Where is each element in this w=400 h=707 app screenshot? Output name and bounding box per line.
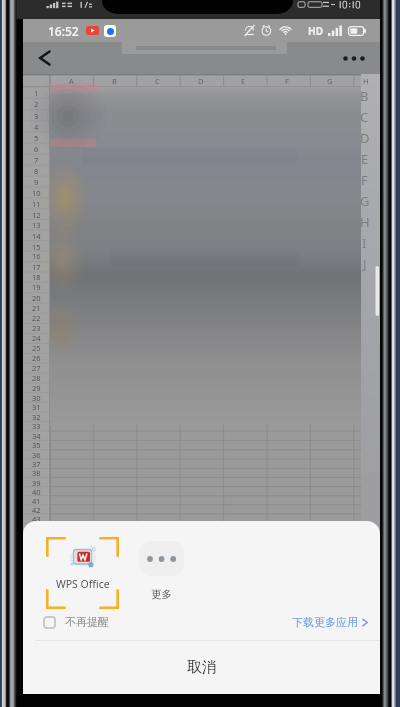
staticText: E	[241, 76, 246, 86]
staticText: 18	[32, 272, 41, 282]
staticText: HD	[308, 24, 323, 38]
staticText: 20	[32, 293, 41, 303]
staticText: 40	[32, 487, 41, 496]
staticText: F	[361, 171, 368, 189]
staticText: 不再提醒	[65, 615, 109, 629]
staticText: 24	[32, 333, 41, 343]
staticText: A	[69, 76, 74, 86]
staticText: B	[360, 87, 369, 105]
staticText: 2	[34, 99, 39, 109]
staticText: 19	[32, 282, 41, 292]
staticText: 9	[34, 177, 39, 187]
staticText: 8	[34, 166, 39, 176]
button[interactable]: WPS Office	[46, 537, 119, 609]
staticText: H	[360, 213, 370, 231]
staticText: 1	[34, 88, 39, 98]
staticText: 12	[32, 210, 41, 220]
staticText: 28	[32, 373, 41, 383]
staticText: D	[360, 129, 370, 147]
staticText: 17	[32, 262, 41, 272]
staticText: I	[362, 234, 367, 252]
staticText: 更多	[151, 588, 172, 601]
staticText: 29	[32, 383, 41, 393]
staticText: C	[360, 108, 369, 126]
staticText: H	[363, 76, 369, 86]
staticText: 6	[34, 144, 39, 154]
staticText: 35	[32, 440, 41, 449]
staticText: 10	[32, 188, 41, 198]
staticText: 取消	[187, 658, 217, 677]
staticText: 7	[34, 155, 39, 165]
staticText: 23	[32, 323, 41, 333]
staticText: 15	[32, 242, 41, 252]
staticText: 36	[32, 450, 41, 459]
staticText: 13	[32, 220, 41, 230]
staticText: B	[112, 76, 117, 86]
staticText: 33	[32, 421, 41, 430]
staticText: G	[327, 76, 333, 86]
staticText: G	[360, 192, 370, 210]
staticText: 41	[32, 496, 41, 505]
staticText: 37	[32, 459, 41, 468]
staticText: 16	[32, 251, 41, 261]
staticText: 5	[34, 133, 39, 143]
staticText: 21	[32, 303, 41, 313]
staticText: 31	[32, 402, 41, 412]
staticText: 43	[32, 514, 41, 523]
staticText: 4	[34, 122, 39, 132]
staticText: C	[155, 76, 160, 86]
staticText: 25	[32, 343, 41, 353]
staticText: 30	[32, 393, 41, 403]
staticText: D	[198, 76, 204, 86]
staticText: 26	[32, 353, 41, 363]
staticText: 22	[32, 313, 41, 323]
staticText: E	[361, 150, 369, 168]
staticText: 39	[32, 478, 41, 487]
button[interactable]: 下载更多应用	[292, 612, 368, 632]
staticText: 3	[34, 111, 39, 121]
staticText: 32	[32, 412, 41, 422]
button[interactable]: More options	[336, 42, 372, 74]
button[interactable]: More	[125, 537, 198, 609]
staticText: 16:52	[48, 23, 79, 39]
staticText: J	[363, 255, 367, 273]
staticText: 11	[32, 199, 41, 209]
button[interactable]: 取消	[23, 641, 380, 694]
staticText: 38	[32, 468, 41, 477]
staticText: F	[285, 76, 289, 86]
staticText: 27	[32, 363, 41, 373]
button[interactable]: Back	[23, 42, 67, 74]
button[interactable]: 不再提醒	[43, 612, 109, 632]
staticText: WPS Office	[56, 577, 110, 591]
staticText: 14	[32, 231, 41, 241]
staticText: 42	[32, 505, 41, 514]
staticText: 34	[32, 431, 41, 440]
staticText: 下载更多应用	[292, 615, 358, 629]
